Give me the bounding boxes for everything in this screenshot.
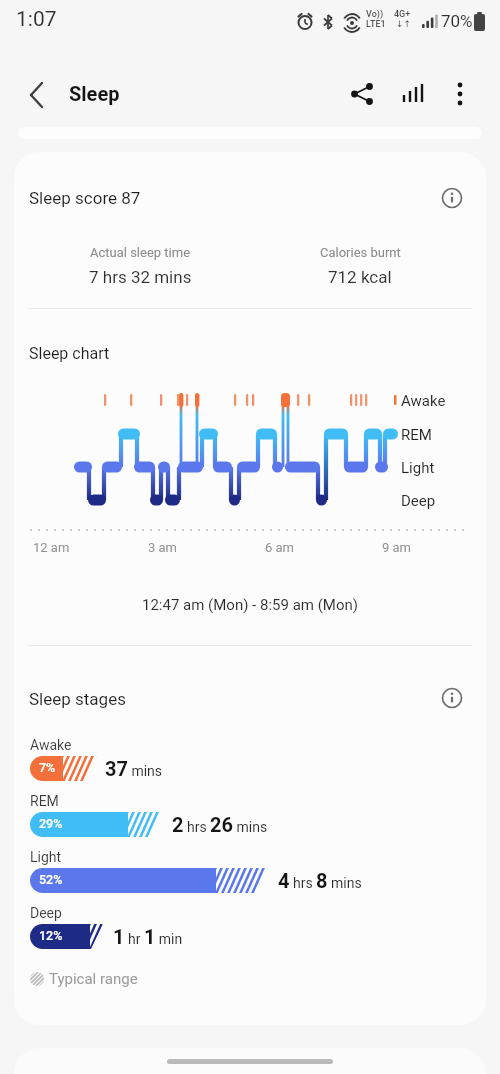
staticText: Actual sleep time [90, 245, 191, 260]
staticText: 2 hrs 26 mins [172, 813, 268, 836]
staticText: LTE1 [366, 19, 386, 30]
staticText: Sleep chart [29, 344, 110, 363]
staticText: Awake [401, 392, 446, 410]
staticText: Sleep score 87 [29, 188, 141, 208]
staticText: 4 hrs 8 mins [278, 869, 362, 892]
staticText: 12 am [33, 540, 70, 555]
staticText: Calories burnt [320, 245, 401, 260]
staticText: 3 am [148, 540, 178, 555]
staticText: Typical range [49, 970, 138, 988]
staticText: 29% [39, 816, 63, 831]
button[interactable] [441, 687, 463, 709]
button[interactable] [348, 80, 376, 108]
staticText: Awake [30, 737, 72, 753]
button[interactable] [450, 78, 470, 112]
button[interactable] [441, 187, 463, 209]
button[interactable] [399, 80, 427, 108]
staticText: Sleep [69, 82, 120, 105]
staticText: Deep [401, 492, 436, 510]
button[interactable]: 12% [30, 924, 117, 949]
staticText: 12% [39, 928, 63, 943]
staticText: 1 hr 1 min [113, 925, 183, 948]
staticText: 712 kcal [328, 267, 392, 287]
staticText: 12:47 am (Mon) - 8:59 am (Mon) [142, 596, 358, 614]
staticText: 52% [39, 872, 63, 887]
staticText: 70% [441, 11, 473, 31]
button[interactable]: 7% [30, 756, 111, 781]
staticText: ↓↑ [396, 19, 412, 29]
staticText: REM [30, 793, 59, 809]
staticText: Light [30, 849, 62, 865]
staticText: 7% [39, 760, 56, 775]
staticText: 6 am [265, 540, 295, 555]
staticText: 7 hrs 32 mins [89, 267, 192, 287]
button[interactable] [20, 78, 56, 112]
staticText: Deep [30, 905, 62, 921]
staticText: 4G+ [394, 9, 411, 20]
staticText: 1:07 [16, 7, 57, 32]
staticText: Vo)) [366, 9, 384, 20]
staticText: REM [401, 426, 432, 444]
button[interactable]: 52% [30, 868, 281, 893]
staticText: 37 mins [105, 757, 163, 780]
button[interactable]: 29% [30, 812, 174, 837]
staticText: Light [401, 459, 435, 477]
staticText: Sleep stages [29, 689, 126, 709]
staticText: 9 am [382, 540, 412, 555]
